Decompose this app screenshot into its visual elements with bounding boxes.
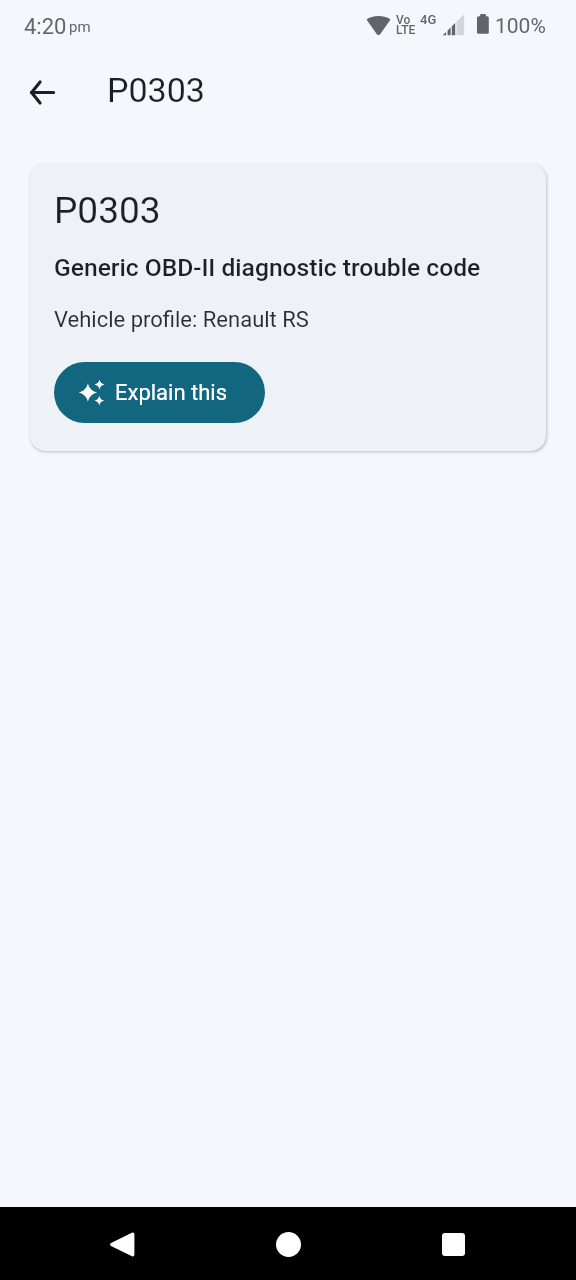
staticText: P0303 [107, 70, 205, 110]
staticText: P0303 [54, 189, 161, 232]
button[interactable]: Explain this [54, 362, 265, 423]
staticText: 4:20 [24, 14, 67, 40]
staticText: 4G [420, 12, 437, 27]
staticText: Vo [396, 13, 411, 27]
staticText: pm [69, 18, 91, 36]
button[interactable]: Recent apps [424, 1215, 482, 1273]
button[interactable]: Home [259, 1215, 317, 1273]
button[interactable]: Back [18, 68, 66, 116]
staticText: Generic OBD-II diagnostic trouble code [54, 253, 481, 282]
staticText: Explain this [115, 380, 228, 406]
staticText: 100% [495, 14, 546, 39]
staticText: Vehicle profile: Renault RS [54, 307, 309, 333]
staticText: LTE [396, 23, 416, 37]
button[interactable]: Navigate back [93, 1215, 151, 1273]
